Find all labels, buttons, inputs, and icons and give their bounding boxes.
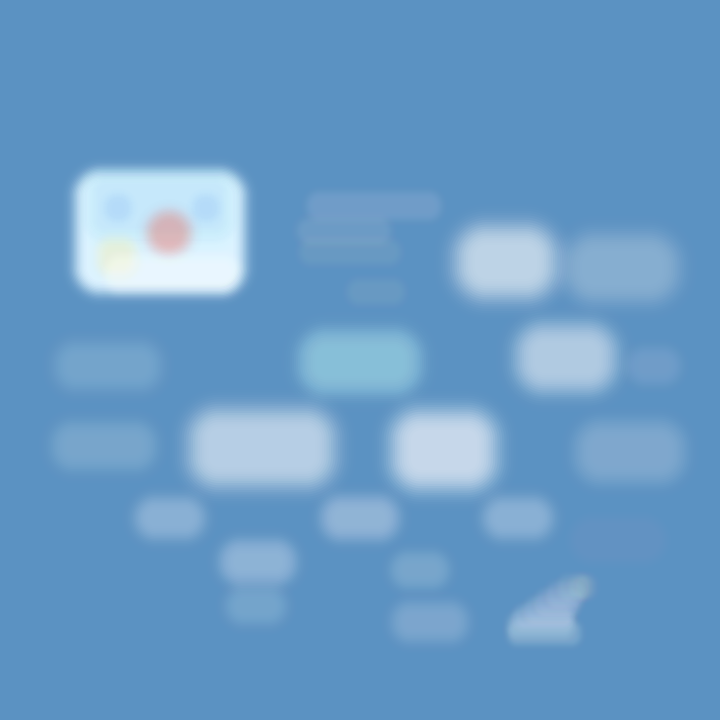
button[interactable]: Send (0, 0, 720, 720)
button[interactable]: Article thumbnail (0, 0, 720, 720)
button[interactable]: Secondary action (0, 0, 720, 720)
button[interactable]: Primary action (0, 0, 720, 720)
